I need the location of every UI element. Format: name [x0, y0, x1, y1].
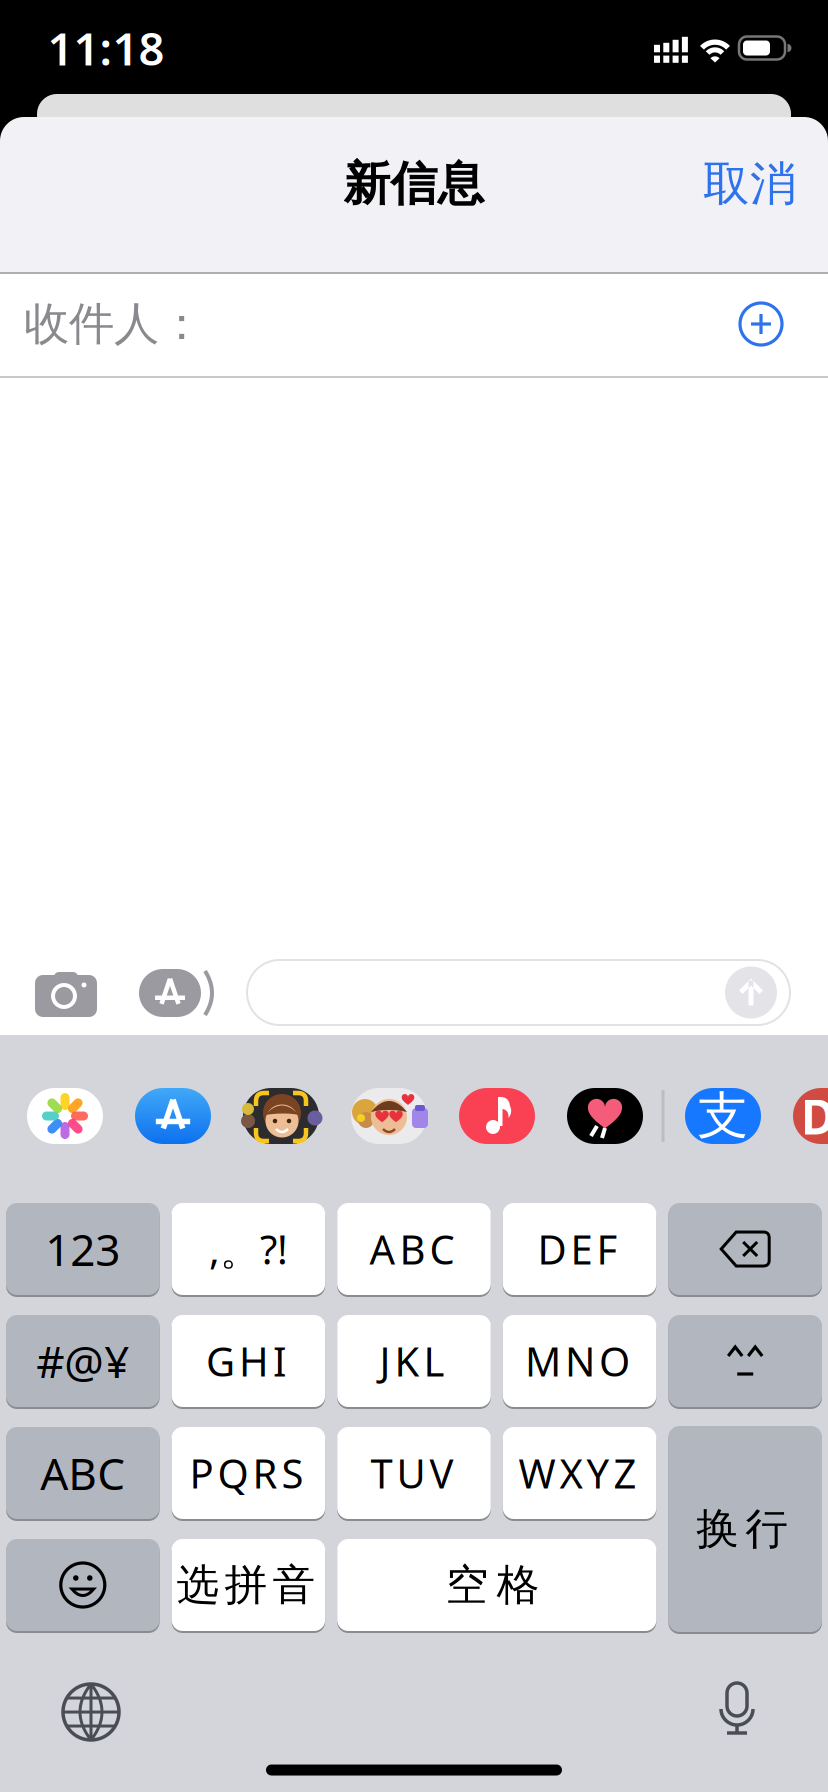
- button[interactable]: key: [668, 1425, 822, 1633]
- button[interactable]: key: [503, 1314, 656, 1408]
- staticText: 11:18: [47, 18, 164, 78]
- button[interactable]: Next keyboard: [62, 1683, 120, 1741]
- button[interactable]: Send: [725, 966, 777, 1018]
- staticText: MNO: [525, 1334, 630, 1387]
- button[interactable]: key: [172, 1426, 325, 1520]
- staticText: ,。?!: [209, 1222, 288, 1276]
- button[interactable]: App: [27, 1088, 103, 1144]
- button[interactable]: key: [503, 1426, 656, 1520]
- staticText: TUV: [370, 1446, 453, 1499]
- staticText: 选拼音: [176, 1559, 315, 1611]
- staticText: 123: [45, 1220, 120, 1278]
- staticText: ABC: [40, 1444, 125, 1502]
- button[interactable]: App: [243, 1088, 319, 1144]
- button[interactable]: Camera: [35, 971, 97, 1017]
- button[interactable]: key: [337, 1314, 491, 1408]
- button[interactable]: key: [503, 1202, 656, 1296]
- staticText: WXYZ: [519, 1446, 637, 1499]
- staticText: D: [800, 1084, 828, 1148]
- button[interactable]: key: [172, 1538, 325, 1632]
- button[interactable]: key: [6, 1314, 160, 1408]
- button[interactable]: key: [337, 1538, 656, 1632]
- button[interactable]: key: [337, 1202, 491, 1296]
- button[interactable]: key: [172, 1202, 325, 1296]
- staticText: 收件人：: [24, 296, 204, 352]
- button[interactable]: key: [6, 1538, 160, 1632]
- button[interactable]: App: [685, 1088, 761, 1144]
- button[interactable]: key: [337, 1426, 491, 1520]
- button[interactable]: key: [668, 1202, 822, 1296]
- button[interactable]: Message field: [247, 960, 790, 1025]
- button[interactable]: App Store: [135, 1088, 211, 1144]
- staticText: 换行: [696, 1503, 788, 1555]
- button[interactable]: App: [567, 1088, 643, 1144]
- staticText: PQRS: [189, 1446, 303, 1499]
- staticText: DEF: [538, 1222, 618, 1275]
- button[interactable]: key: [172, 1314, 325, 1408]
- staticText: JKL: [379, 1334, 444, 1387]
- button[interactable]: Apps: [139, 968, 213, 1018]
- button[interactable]: App: [351, 1088, 427, 1144]
- button[interactable]: Dictation: [718, 1682, 756, 1738]
- staticText: 取消: [703, 155, 797, 213]
- button[interactable]: 取消: [685, 149, 815, 219]
- staticText: 空格: [446, 1559, 540, 1611]
- staticText: #@¥: [36, 1332, 129, 1390]
- button[interactable]: key: [6, 1202, 160, 1296]
- staticText: 新信息: [343, 155, 484, 213]
- staticText: 支: [697, 1085, 748, 1147]
- button[interactable]: App: [459, 1088, 535, 1144]
- button[interactable]: key: [6, 1426, 160, 1520]
- staticText: ABC: [369, 1222, 454, 1275]
- button[interactable]: Add Contact: [740, 303, 782, 345]
- button[interactable]: App: [793, 1088, 828, 1144]
- staticText: GHI: [206, 1334, 287, 1387]
- button[interactable]: key: [668, 1314, 822, 1408]
